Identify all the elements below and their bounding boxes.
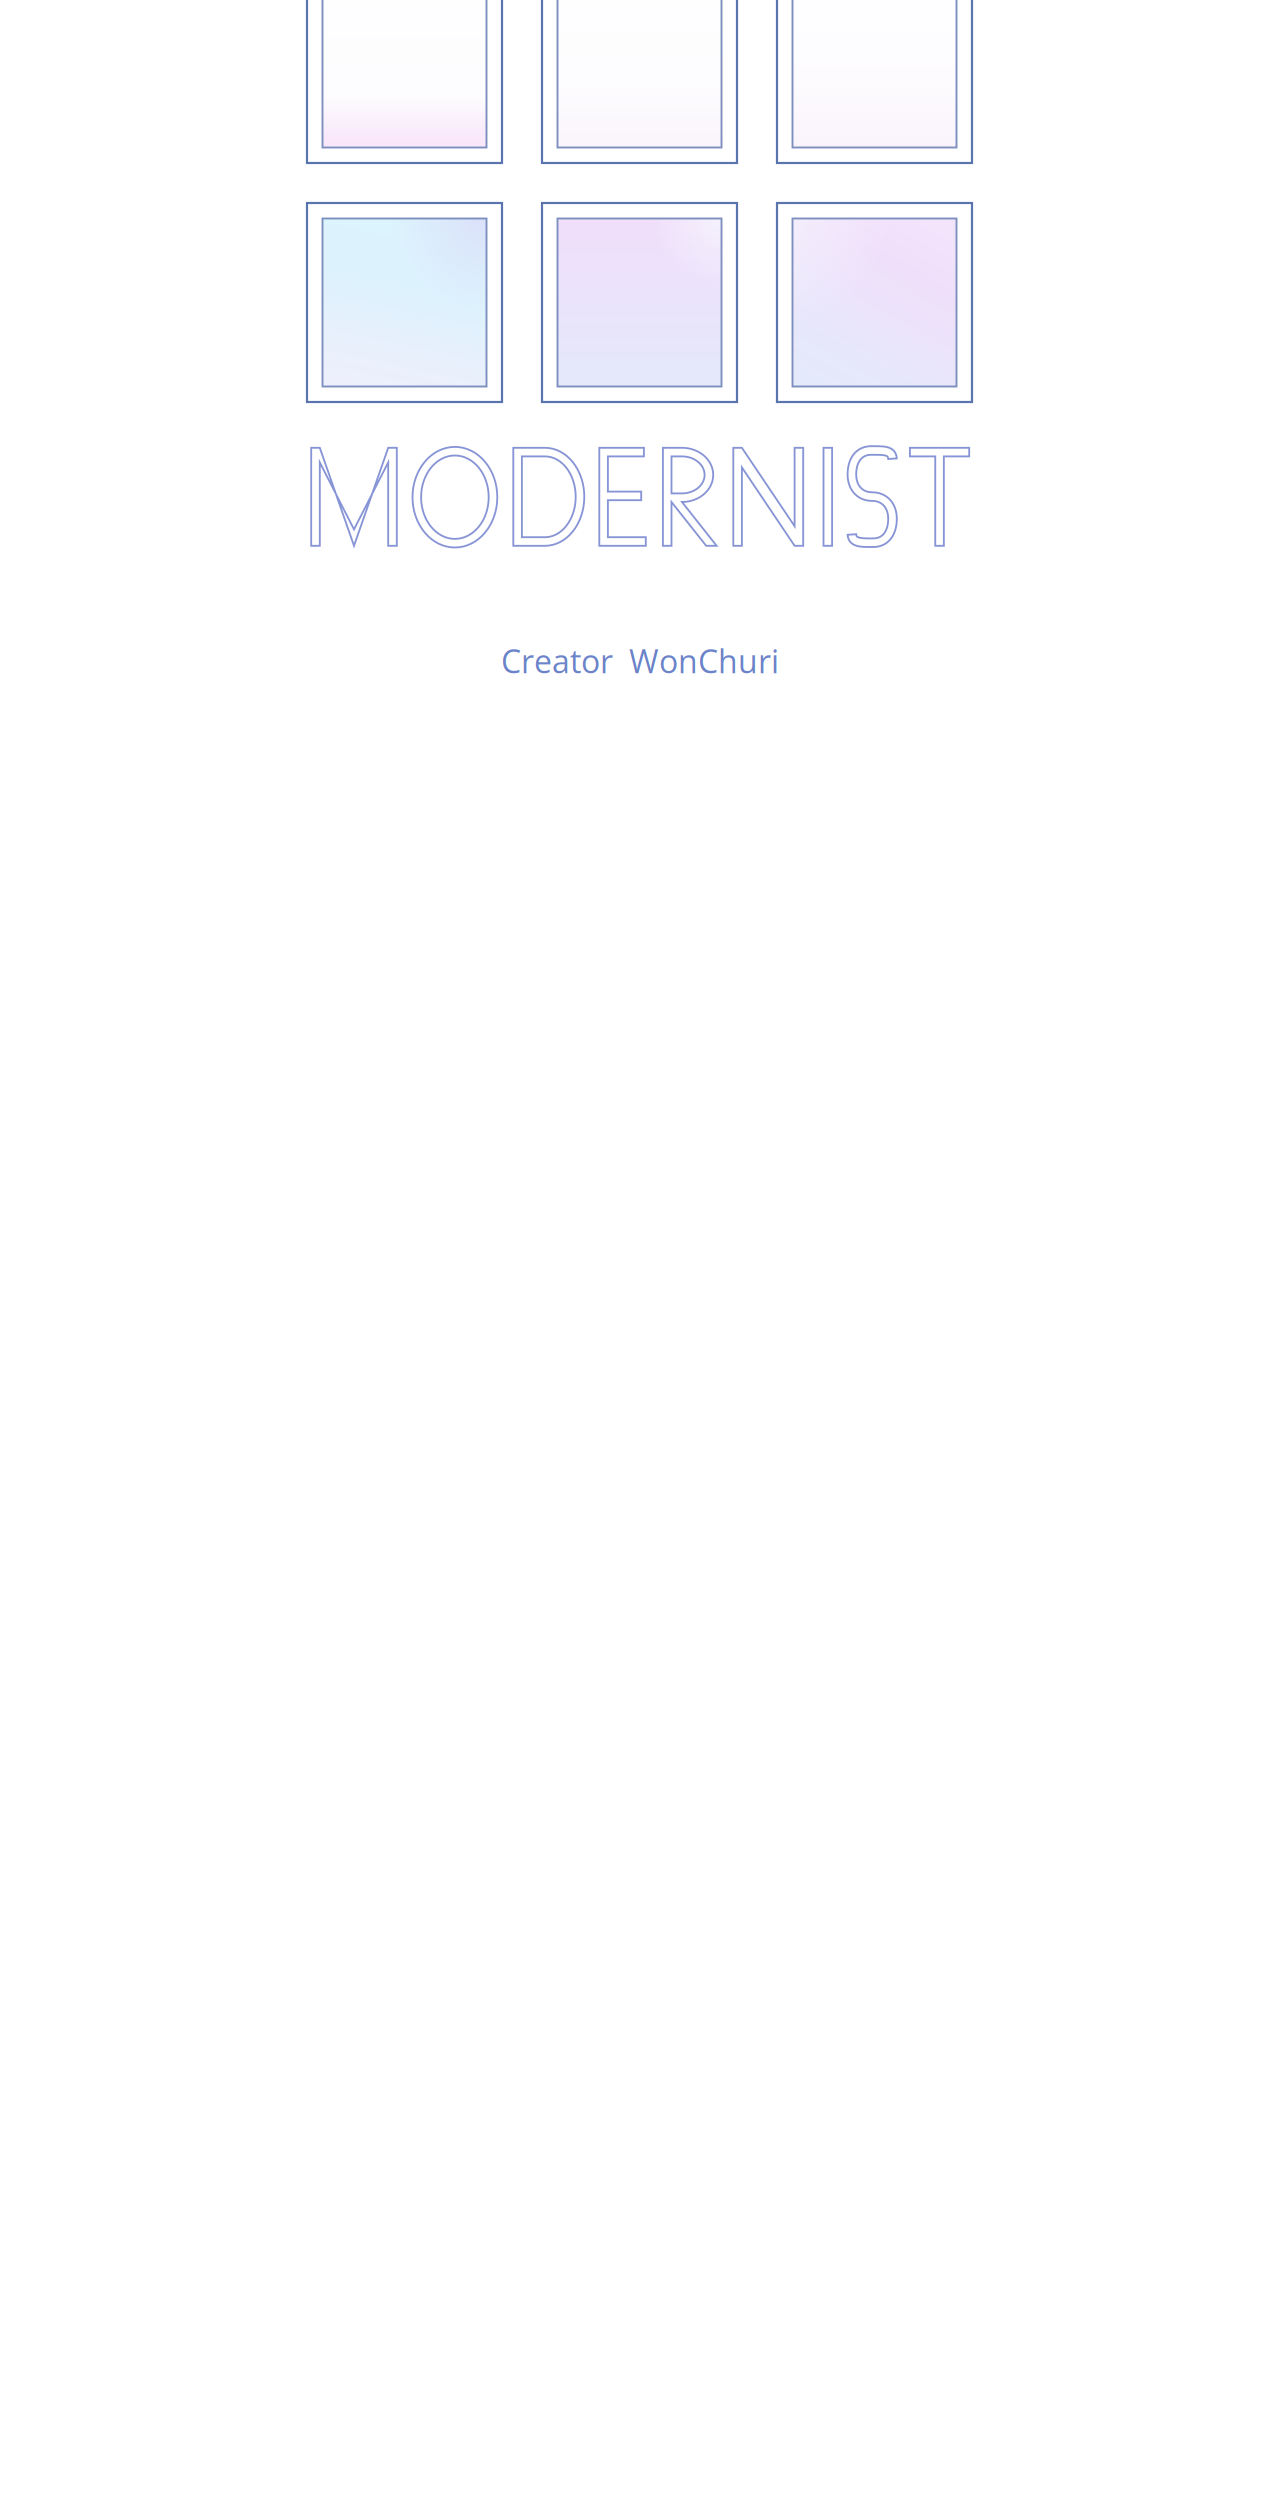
button[interactable]: Panel 4 bbox=[307, 203, 502, 402]
staticText: Creator WonChuri bbox=[501, 639, 779, 683]
button[interactable]: Creator WonChuri bbox=[0, 639, 1280, 683]
button[interactable]: Panel 6 bbox=[777, 203, 972, 402]
button[interactable]: Panel 1 bbox=[307, 0, 502, 163]
button[interactable]: Panel 3 bbox=[777, 0, 972, 163]
button[interactable]: Panel 2 bbox=[542, 0, 737, 163]
button[interactable]: Panel 5 bbox=[542, 203, 737, 402]
